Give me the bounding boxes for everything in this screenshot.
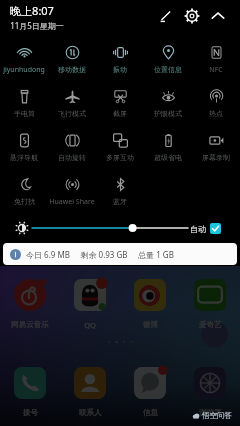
button[interactable]: 移动数据 <box>48 42 96 74</box>
staticText: 热点 <box>209 109 223 118</box>
staticText: 蓝牙 <box>113 197 127 206</box>
staticText: Huawei Share <box>49 197 95 207</box>
button[interactable]: 免打扰 <box>0 174 48 206</box>
button[interactable]: QQ <box>60 279 120 330</box>
button[interactable]: Auto brightness <box>210 223 221 234</box>
button[interactable]: 飞行模式 <box>48 86 96 118</box>
button[interactable]: 多屏互动 <box>96 130 144 162</box>
staticText: 截屏 <box>113 109 127 118</box>
staticText: 自动 <box>190 224 206 234</box>
button[interactable]: 蓝牙 <box>96 174 144 206</box>
staticText: 悬浮导航 <box>10 153 38 162</box>
button[interactable]: 拨号 <box>0 367 60 417</box>
button[interactable]: 手电筒 <box>0 86 48 118</box>
button[interactable]: 悬浮导航 <box>0 130 48 162</box>
button[interactable]: 浏览器 <box>180 367 240 417</box>
staticText: 位置信息 <box>154 65 182 74</box>
button[interactable]: NFC <box>192 42 240 75</box>
button[interactable]: 护眼模式 <box>144 86 192 118</box>
staticText: NFC <box>209 65 223 75</box>
staticText: 晚上8:07 <box>10 3 54 18</box>
button[interactable]: 网易云音乐 <box>0 279 60 329</box>
button[interactable]: 联系人 <box>60 367 120 417</box>
staticText: 移动数据 <box>58 65 86 74</box>
staticText: 手电筒 <box>14 109 35 118</box>
button[interactable]: jiyunhudong <box>0 42 48 75</box>
staticText: 联系人 <box>79 408 102 417</box>
button[interactable]: 超级省电 <box>144 130 192 162</box>
button[interactable]: Edit <box>157 7 175 25</box>
staticText: 11月5日星期一 <box>10 20 64 31</box>
staticText: 总量 1 GB <box>138 249 174 260</box>
button[interactable]: 振动 <box>96 42 144 74</box>
staticText: 剩余 0.93 GB <box>80 249 128 260</box>
button[interactable]: Settings <box>183 7 201 25</box>
staticText: 悟空问答 <box>202 411 232 420</box>
staticText: 浏览器 <box>199 408 222 417</box>
staticText: 免打扰 <box>14 197 35 206</box>
button[interactable]: 位置信息 <box>144 42 192 74</box>
button[interactable]: 自动旋转 <box>48 130 96 162</box>
staticText: 飞行模式 <box>58 109 86 118</box>
button[interactable]: 微博 <box>120 279 180 329</box>
staticText: 微博 <box>143 320 158 329</box>
button[interactable]: 热点 <box>192 86 240 118</box>
staticText: 信息 <box>143 408 158 417</box>
staticText: 屏幕录制 <box>202 153 230 162</box>
button[interactable]: 今日 6.9 MB <box>3 243 237 265</box>
button[interactable]: 爱奇艺 <box>180 279 240 329</box>
staticText: jiyunhudong <box>3 65 45 75</box>
staticText: 超级省电 <box>154 153 182 162</box>
button[interactable]: Collapse <box>209 7 227 25</box>
staticText: 网易云音乐 <box>11 320 49 329</box>
button[interactable]: 截屏 <box>96 86 144 118</box>
staticText: 爱奇艺 <box>199 320 222 329</box>
staticText: 振动 <box>113 65 127 74</box>
staticText: 护眼模式 <box>154 109 182 118</box>
button[interactable]: 信息 <box>120 367 180 417</box>
staticText: 拨号 <box>23 408 38 417</box>
button[interactable]: 屏幕录制 <box>192 130 240 162</box>
staticText: 今日 6.9 MB <box>26 249 70 260</box>
staticText: 多屏互动 <box>106 153 134 162</box>
button[interactable]: Huawei Share <box>48 174 96 207</box>
staticText: 自动旋转 <box>58 153 86 162</box>
staticText: QQ <box>84 320 96 330</box>
